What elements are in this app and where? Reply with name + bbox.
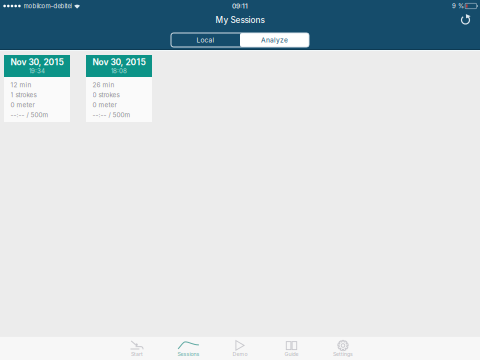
button[interactable]: Guide: [266, 339, 317, 357]
staticText: Start: [131, 351, 143, 357]
staticText: Guide: [284, 351, 298, 357]
staticText: Sessions: [177, 351, 199, 357]
staticText: 0 meter: [93, 101, 117, 109]
staticText: mobilcom–debitel: [23, 2, 71, 10]
button[interactable]: Refresh: [461, 14, 471, 26]
staticText: --:-- / 500m: [11, 111, 49, 119]
staticText: Settings: [333, 351, 353, 357]
staticText: 12 min: [11, 81, 32, 89]
staticText: 18:08: [111, 67, 127, 75]
button[interactable]: Demo: [214, 339, 266, 357]
staticText: 19:34: [29, 67, 45, 75]
staticText: Analyze: [261, 36, 288, 44]
staticText: Nov 30, 2015: [10, 57, 63, 67]
staticText: 0 strokes: [93, 91, 120, 99]
staticText: Local: [196, 36, 214, 44]
staticText: My Sessions: [215, 15, 264, 25]
staticText: 9 %: [452, 2, 464, 10]
staticText: 0 meter: [11, 101, 35, 109]
button[interactable]: Sessions: [163, 339, 214, 357]
button[interactable]: Start: [111, 339, 163, 357]
button[interactable]: Settings: [317, 339, 369, 357]
button[interactable]: Nov 30, 2015: [4, 55, 70, 122]
staticText: 09:11: [232, 2, 248, 10]
staticText: 1 strokes: [11, 91, 37, 99]
button[interactable]: Nov 30, 2015: [86, 55, 152, 122]
staticText: 26 min: [93, 81, 115, 89]
button[interactable]: Local: [171, 33, 240, 47]
staticText: Demo: [232, 351, 247, 357]
staticText: --:-- / 500m: [93, 111, 131, 119]
button[interactable]: Analyze: [240, 33, 309, 47]
staticText: Nov 30, 2015: [92, 57, 145, 67]
